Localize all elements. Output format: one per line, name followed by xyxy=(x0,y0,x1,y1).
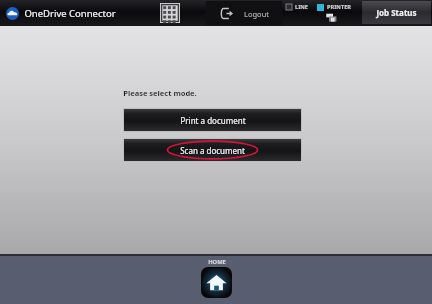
button[interactable]: Job Status xyxy=(362,1,431,24)
staticText: Logout xyxy=(244,9,269,19)
button[interactable]: Print a document xyxy=(124,109,301,131)
button[interactable]: Keypad xyxy=(160,3,180,23)
button[interactable]: OneDrive Connector xyxy=(0,0,134,26)
staticText: Job Status xyxy=(376,7,417,18)
button[interactable]: Logout xyxy=(206,1,282,25)
button[interactable]: Home xyxy=(201,267,232,298)
staticText: Scan a document xyxy=(180,145,245,156)
button[interactable]: Machine status xyxy=(282,0,360,26)
staticText: Please select mode. xyxy=(123,88,197,98)
button[interactable]: Scan a document xyxy=(124,139,301,161)
staticText: Print a document xyxy=(180,115,246,126)
staticText: HOME xyxy=(208,258,226,266)
staticText: LINE xyxy=(295,3,308,11)
staticText: PRINTER xyxy=(327,3,351,11)
staticText: OneDrive Connector xyxy=(24,7,116,20)
